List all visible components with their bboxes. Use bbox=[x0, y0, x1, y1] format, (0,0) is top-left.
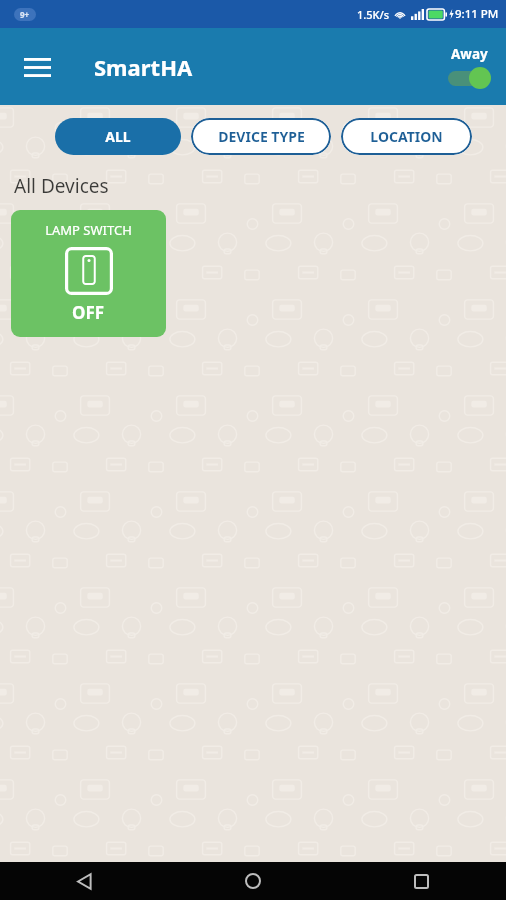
staticText: 9:11 PM bbox=[455, 6, 499, 22]
button[interactable]: LAMP SWITCH bbox=[11, 210, 166, 337]
staticText: LAMP SWITCH bbox=[45, 221, 132, 239]
staticText: ALL bbox=[105, 127, 131, 146]
staticText: OFF bbox=[72, 301, 105, 324]
button[interactable]: LOCATION bbox=[341, 118, 472, 155]
button[interactable]: ALL bbox=[55, 118, 181, 155]
staticText: Away bbox=[451, 45, 488, 63]
button[interactable]: Away bbox=[446, 45, 492, 89]
staticText: 9+ bbox=[20, 9, 30, 20]
button[interactable]: Recent apps bbox=[337, 862, 506, 900]
button[interactable]: Home bbox=[168, 862, 337, 900]
staticText: 1.5K/s bbox=[357, 7, 390, 22]
button[interactable]: DEVICE TYPE bbox=[191, 118, 331, 155]
staticText: All Devices bbox=[14, 173, 109, 199]
staticText: SmartHA bbox=[94, 52, 193, 82]
staticText: LOCATION bbox=[370, 127, 443, 146]
button[interactable]: Back bbox=[0, 862, 168, 900]
staticText: DEVICE TYPE bbox=[218, 127, 305, 146]
button[interactable]: Open navigation menu bbox=[13, 43, 61, 91]
